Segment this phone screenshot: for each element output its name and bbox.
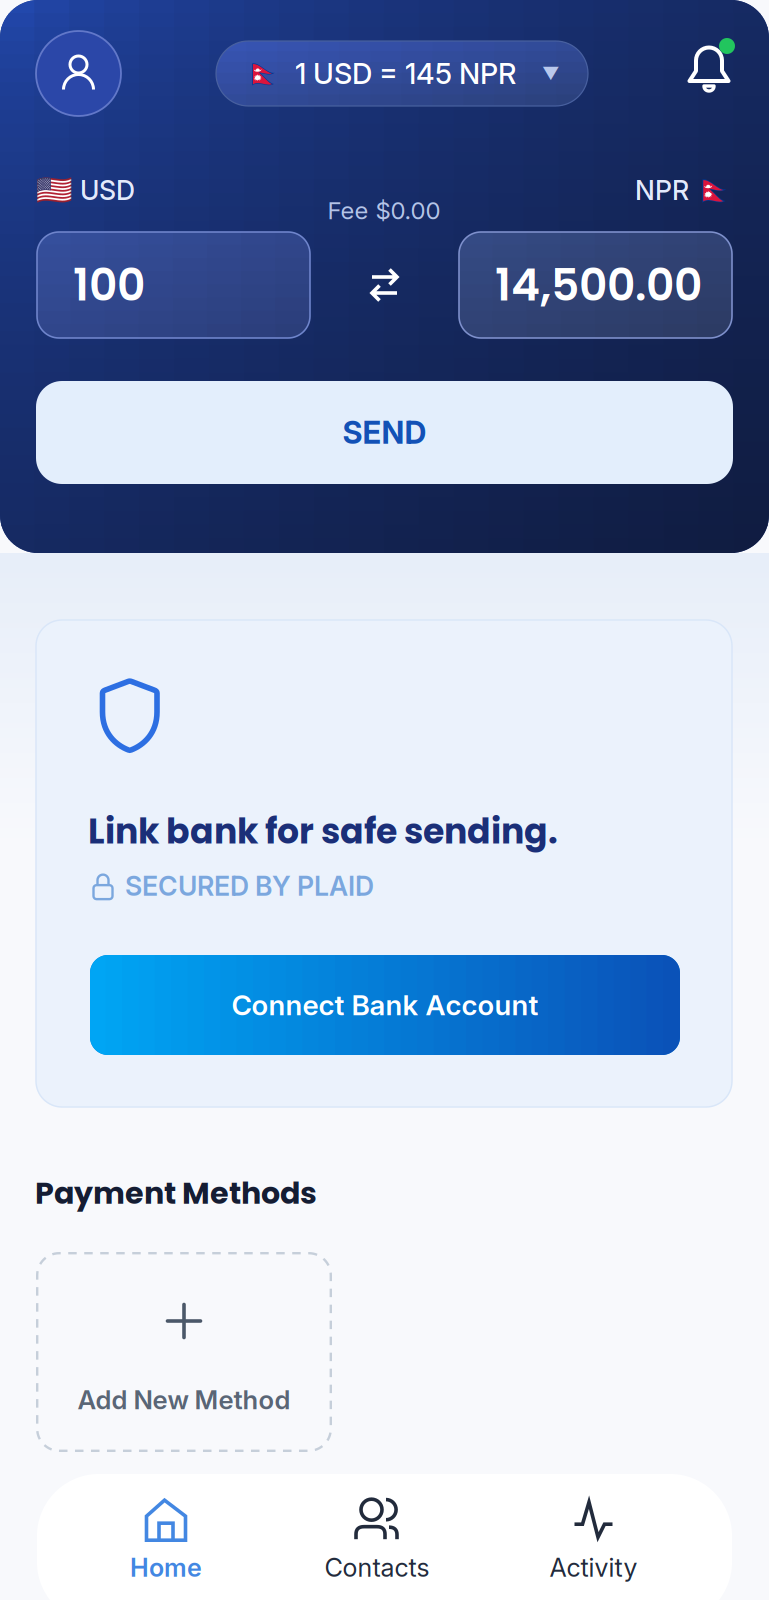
button[interactable]: Contacts	[261, 1490, 493, 1590]
staticText: Home	[130, 1552, 202, 1583]
staticText: 1 USD = 145 NPR	[281, 56, 516, 91]
staticText: 🇺🇸	[36, 173, 73, 207]
staticText: 100	[73, 254, 145, 316]
staticText: ▼	[542, 63, 560, 84]
staticText: 🇳🇵	[696, 173, 733, 207]
button[interactable]: 🇳🇵	[216, 41, 588, 106]
staticText: Link bank for safe sending.	[88, 807, 558, 855]
button[interactable]: SEND	[36, 381, 733, 484]
staticText: Connect Bank Account	[231, 988, 538, 1022]
staticText: 🇳🇵	[246, 57, 281, 90]
button[interactable]: Add New Method	[36, 1252, 332, 1452]
staticText: Fee $0.00	[327, 196, 440, 225]
staticText: NPR	[635, 174, 696, 206]
staticText: USD	[73, 174, 135, 206]
staticText: SECURED BY PLAID	[125, 870, 374, 902]
staticText: SEND	[342, 414, 426, 451]
button[interactable]: Profile	[36, 31, 121, 116]
staticText: 14,500.00	[495, 254, 702, 316]
staticText: Contacts	[324, 1552, 429, 1583]
staticText: Activity	[549, 1552, 637, 1583]
staticText: Payment Methods	[35, 1172, 317, 1214]
button[interactable]: Activity	[478, 1490, 709, 1590]
button[interactable]: Connect Bank Account	[90, 955, 680, 1055]
button[interactable]: Notifications	[687, 38, 745, 94]
button[interactable]: Home	[50, 1490, 282, 1590]
staticText: Add New Method	[77, 1384, 290, 1415]
